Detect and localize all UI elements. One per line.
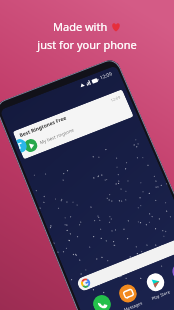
staticText: Best Ringtones Free [18, 115, 68, 139]
button[interactable]: Messages [115, 281, 143, 310]
staticText: My best ringtone [39, 126, 75, 145]
staticText: just for your phone [37, 37, 137, 52]
button[interactable]: Best Ringtones Free [13, 89, 134, 159]
button[interactable]: Play [22, 137, 39, 154]
staticText: 12:09 [110, 94, 122, 103]
button[interactable]: Phone [90, 292, 116, 310]
staticText: 12:09 [99, 70, 113, 81]
staticText: Made with [53, 19, 111, 34]
staticText: Play Store [151, 289, 171, 301]
button[interactable]: Gallery [170, 260, 174, 290]
staticText: Messages [123, 300, 143, 310]
button[interactable]: Play Store [143, 270, 171, 301]
button[interactable] [76, 237, 174, 292]
